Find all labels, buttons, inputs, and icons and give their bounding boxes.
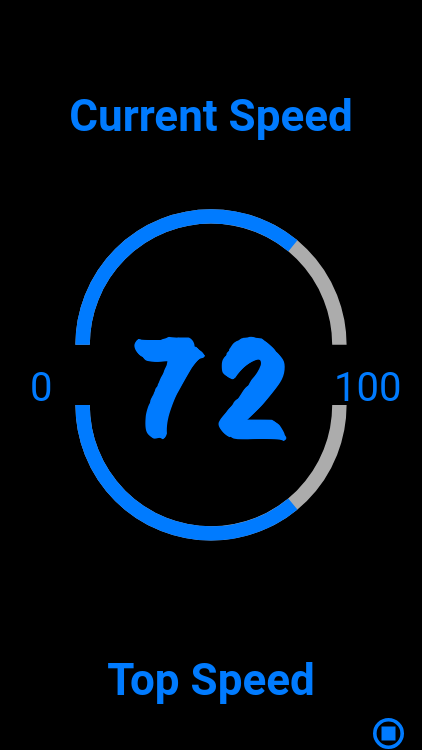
staticText: 2 (216, 293, 290, 483)
staticText: 7 (135, 293, 202, 483)
staticText: 100 (334, 364, 402, 411)
staticText: 7 (136, 292, 203, 482)
staticText: Top Speed (0, 654, 422, 750)
staticText: 7 (136, 294, 203, 484)
staticText: 2 (214, 293, 288, 483)
staticText: 7 (137, 293, 204, 483)
staticText: Current Speed (0, 90, 422, 750)
staticText: 2 (215, 294, 289, 484)
button[interactable]: Stop (372, 717, 405, 750)
staticText: 0 (30, 364, 53, 411)
staticText: 2 (215, 292, 289, 482)
